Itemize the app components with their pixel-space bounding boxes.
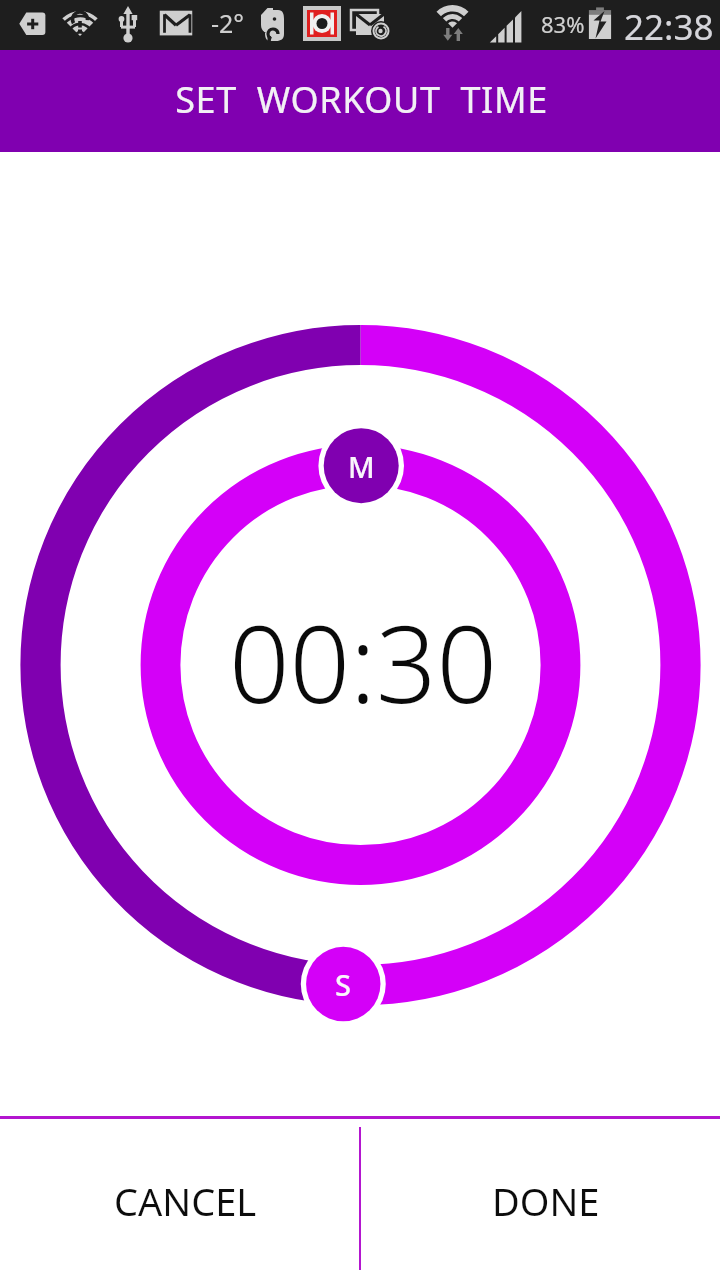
staticText: CANCEL (114, 1175, 257, 1227)
staticText: M (348, 447, 375, 486)
button[interactable]: Seconds handle (301, 942, 385, 1026)
button[interactable]: DONE (360, 1119, 720, 1280)
staticText: DONE (492, 1175, 600, 1227)
staticText: SET WORKOUT TIME (175, 75, 548, 124)
button[interactable]: SET WORKOUT TIME (0, 50, 720, 152)
staticText: S (335, 965, 351, 1004)
staticText: 00:30 (229, 590, 497, 734)
button[interactable]: Minutes handle (319, 424, 403, 508)
staticText: 22:38 (624, 3, 714, 51)
staticText: -2° (211, 6, 245, 40)
button[interactable]: CANCEL (0, 1119, 360, 1280)
staticText: 83% (541, 9, 585, 39)
